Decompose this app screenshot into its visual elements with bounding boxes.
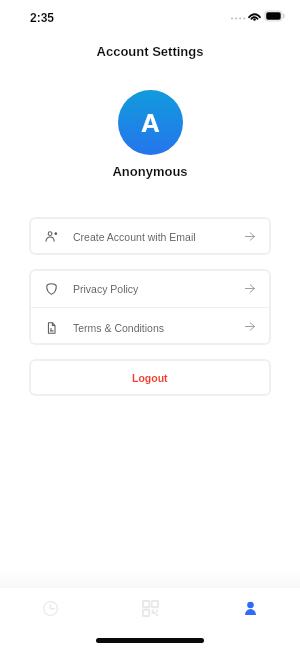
button[interactable]: Privacy Policy (29, 269, 271, 307)
button[interactable]: Logout (29, 359, 271, 396)
staticText: Logout (132, 372, 168, 384)
button[interactable]: Profile (200, 588, 300, 628)
staticText: Account Settings (0, 44, 300, 59)
button[interactable]: Create Account with Email (29, 217, 271, 255)
staticText: A (141, 108, 160, 137)
staticText: Privacy Policy (73, 283, 139, 295)
staticText: Create Account with Email (73, 231, 196, 243)
staticText: 2:35 (30, 11, 55, 24)
button[interactable]: Scan code (100, 588, 200, 628)
button[interactable]: Terms & Conditions (29, 308, 271, 345)
staticText: Anonymous (0, 164, 300, 179)
staticText: Terms & Conditions (73, 322, 165, 334)
